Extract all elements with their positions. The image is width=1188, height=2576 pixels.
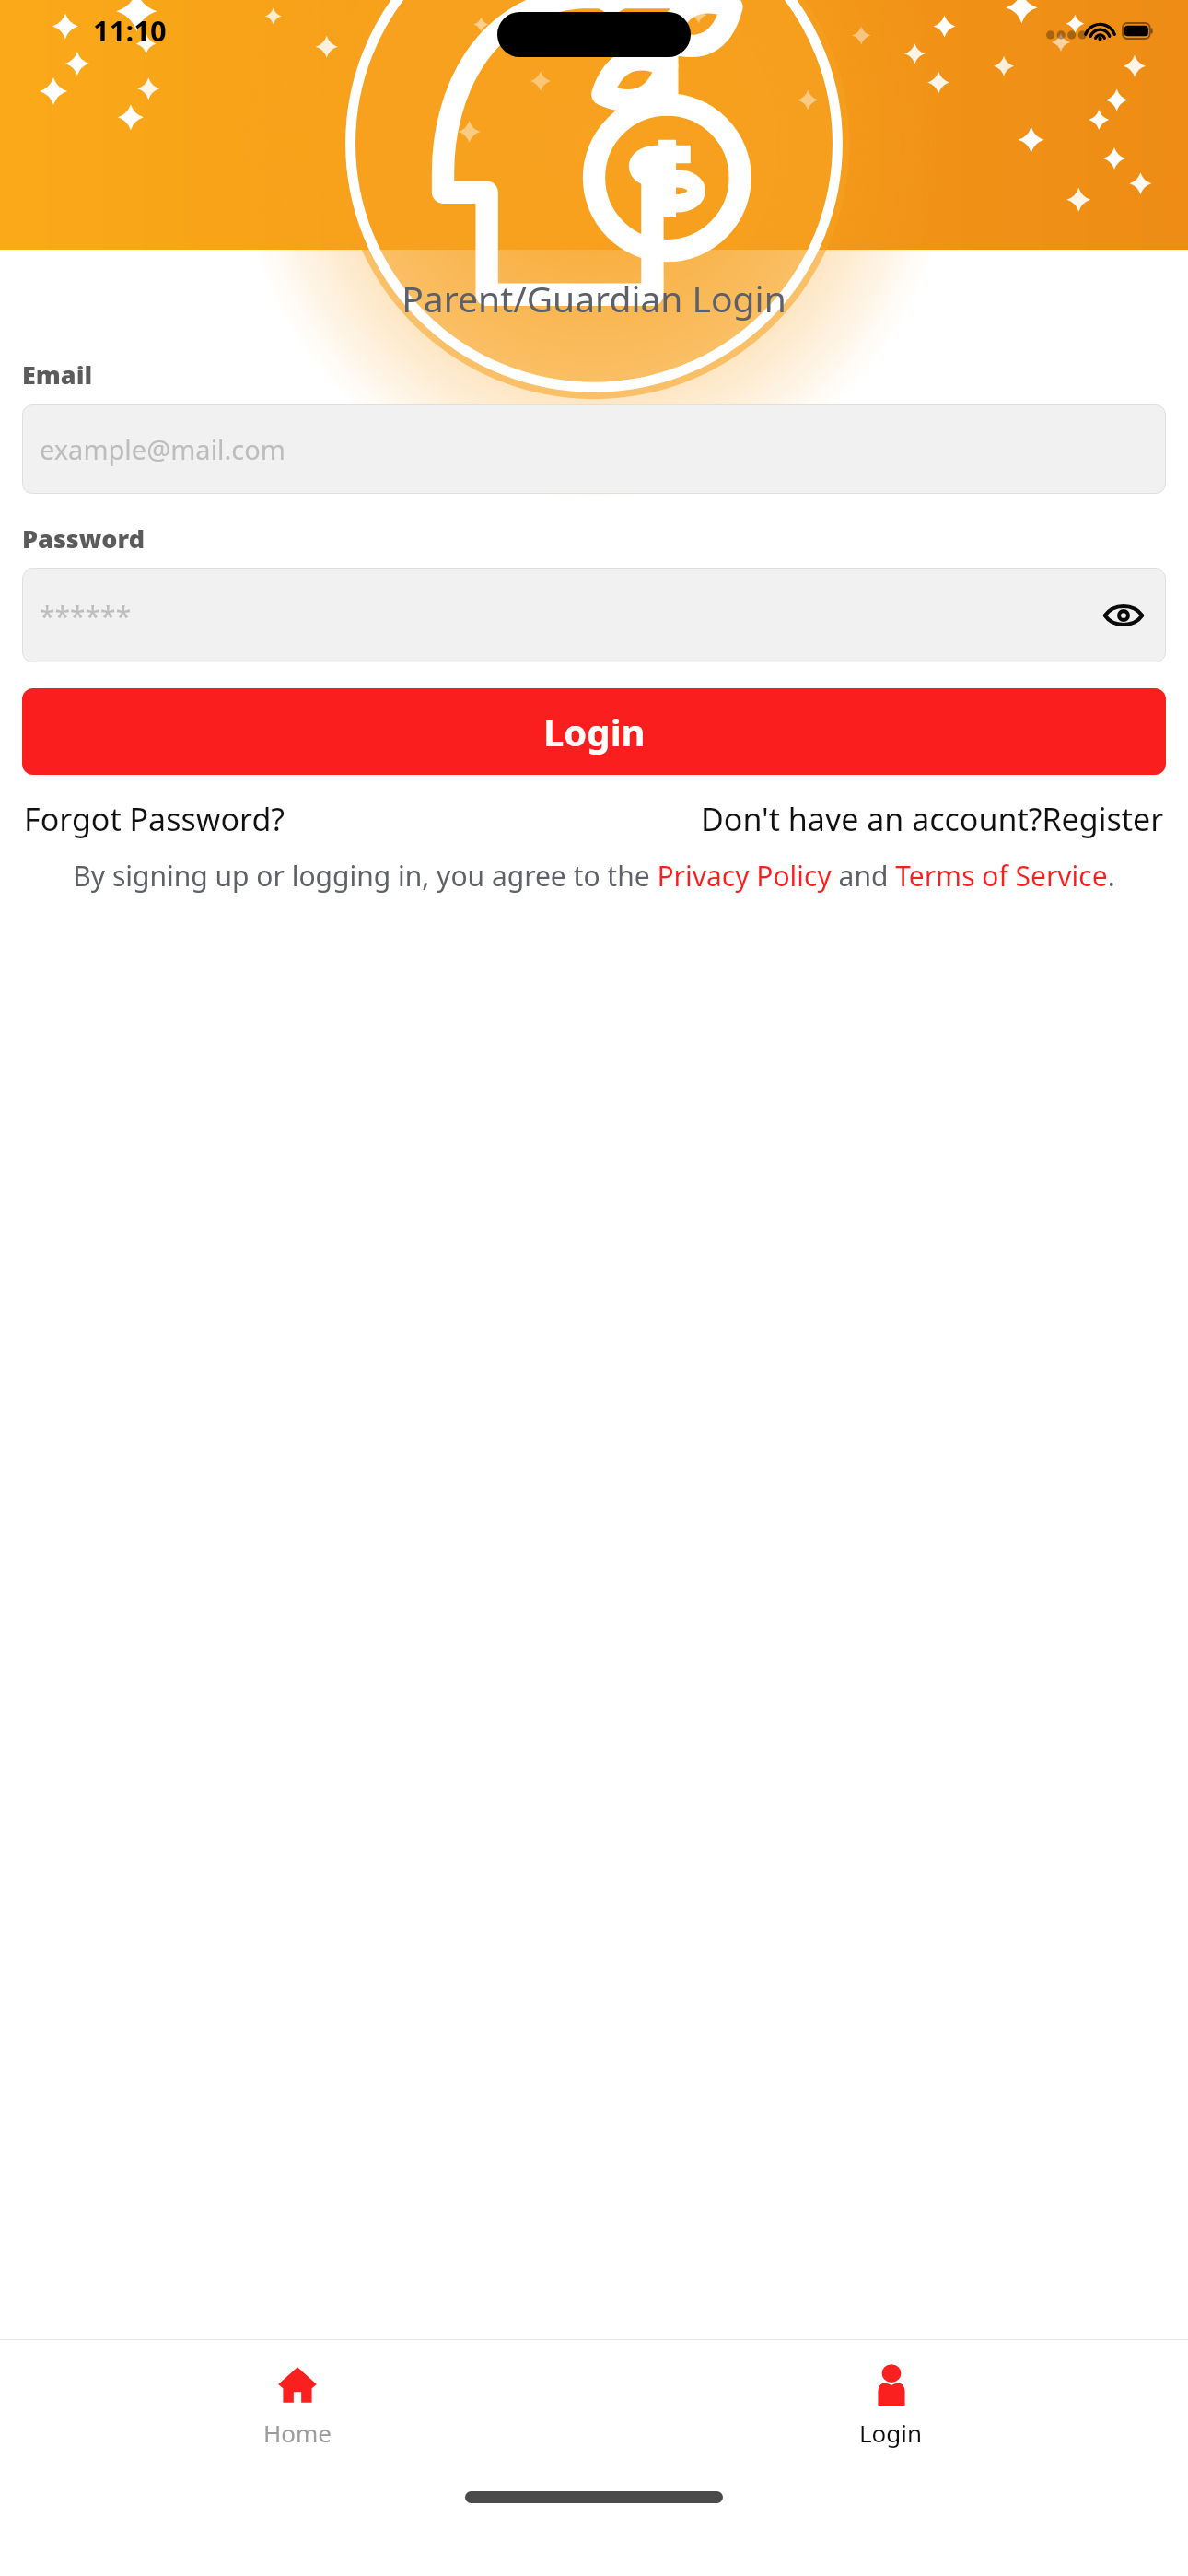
staticText: Parent/Guardian Login	[0, 274, 1188, 322]
button[interactable]: Show password	[1099, 591, 1148, 640]
button[interactable]: example@mail.com	[22, 404, 1166, 494]
button[interactable]: By signing up or logging in, you agree t…	[28, 857, 1160, 895]
button[interactable]: Login	[594, 2340, 1188, 2469]
staticText: By signing up or logging in, you agree t…	[28, 857, 1160, 895]
staticText: Login	[859, 2417, 923, 2449]
button[interactable]: Forgot Password?	[24, 792, 285, 846]
button[interactable]: Login	[22, 688, 1166, 775]
button[interactable]: Home	[0, 2340, 594, 2469]
button[interactable]: Don't have an account?Register	[701, 792, 1164, 846]
staticText: Email	[22, 357, 93, 392]
staticText: Login	[543, 707, 646, 756]
staticText: 11:10	[93, 11, 167, 50]
button[interactable]: ******	[22, 568, 1166, 662]
staticText: Home	[263, 2417, 332, 2449]
staticText: Password	[22, 521, 146, 556]
staticText: ******	[40, 597, 132, 635]
staticText: example@mail.com	[40, 431, 285, 467]
staticText: Forgot Password?	[24, 798, 285, 840]
staticText: Don't have an account?Register	[701, 798, 1164, 840]
